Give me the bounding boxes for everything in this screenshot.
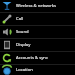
staticText: Wireless & networks — [16, 3, 56, 9]
button[interactable]: Wireless & networks — [0, 0, 75, 12]
button[interactable]: Location — [0, 65, 75, 75]
button[interactable]: Call — [0, 13, 75, 25]
staticText: Call — [16, 16, 24, 22]
staticText: Sound — [16, 29, 29, 35]
staticText: Display — [16, 42, 31, 48]
staticText: Location — [16, 67, 33, 73]
button[interactable]: Display — [0, 39, 75, 51]
staticText: Accounts & sync — [16, 55, 48, 61]
button[interactable]: Accounts & sync — [0, 52, 75, 64]
button[interactable]: Sound — [0, 26, 75, 38]
